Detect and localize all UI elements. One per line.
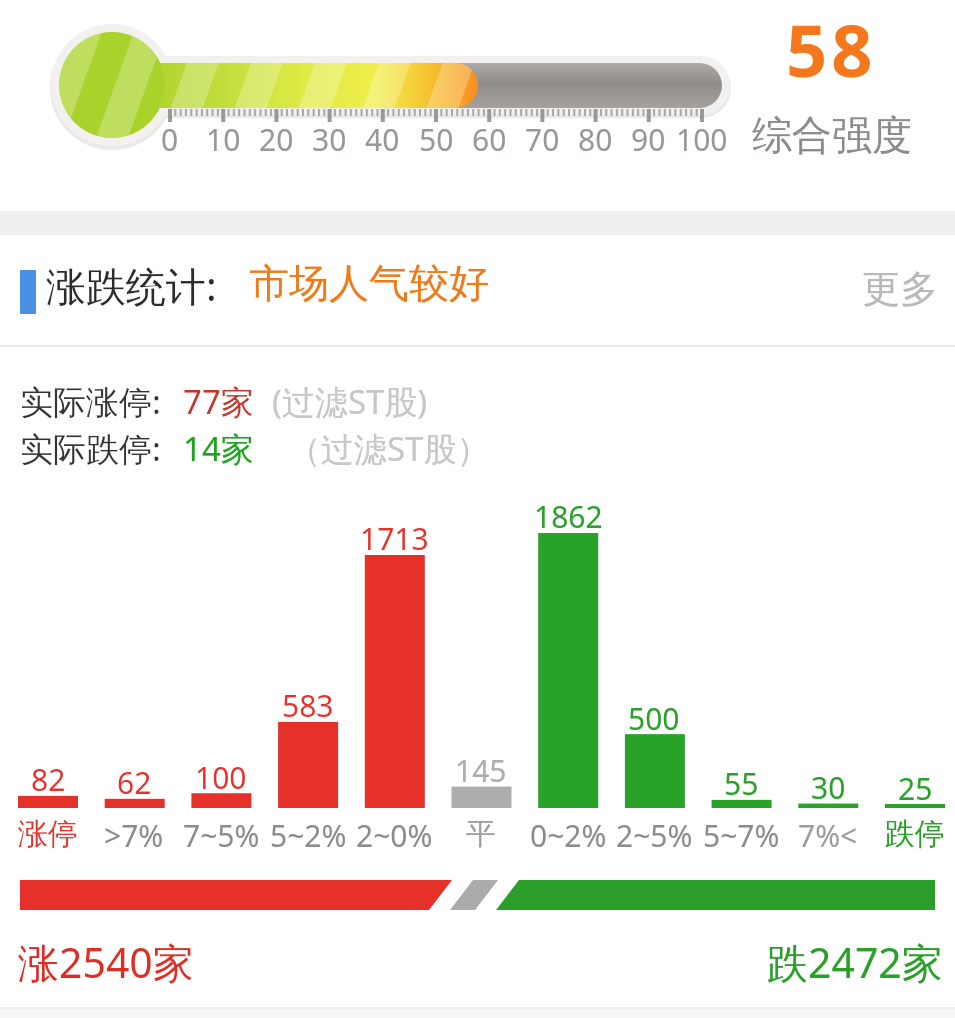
staticText: 1862: [534, 496, 603, 537]
staticText: 30: [811, 767, 846, 808]
button[interactable]: [0, 255, 955, 327]
staticText: 60: [472, 119, 507, 160]
staticText: 145: [455, 750, 507, 791]
staticText: 跌停: [885, 815, 945, 853]
staticText: 跌2472家: [767, 934, 943, 990]
staticText: 5~7%: [703, 815, 780, 856]
staticText: >7%: [104, 815, 164, 856]
staticText: 0~2%: [530, 815, 607, 856]
staticText: 100: [676, 119, 728, 160]
staticText: 82: [31, 759, 66, 800]
staticText: 80: [578, 119, 613, 160]
staticText: 500: [628, 698, 680, 739]
staticText: 70: [525, 119, 560, 160]
staticText: 30: [312, 119, 347, 160]
staticText: 7%<: [798, 815, 858, 856]
staticText: （过滤ST股）: [288, 426, 490, 471]
staticText: 涨停: [18, 815, 78, 853]
staticText: 更多: [862, 265, 938, 313]
staticText: 14家: [183, 426, 254, 471]
staticText: 62: [117, 762, 152, 803]
staticText: 40: [365, 119, 400, 160]
staticText: 涨跌统计:: [46, 258, 217, 313]
staticText: 实际涨停:: [20, 379, 161, 424]
staticText: 10: [206, 119, 241, 160]
staticText: 平: [466, 815, 496, 853]
staticText: 100: [195, 757, 247, 798]
button[interactable]: 更多: [850, 264, 950, 314]
staticText: 25: [898, 768, 933, 809]
staticText: 实际跌停:: [20, 426, 161, 471]
staticText: 55: [724, 763, 759, 804]
staticText: 0: [161, 119, 179, 160]
staticText: 50: [419, 119, 454, 160]
staticText: 583: [282, 685, 334, 726]
staticText: 市场人气较好: [249, 258, 489, 308]
staticText: 2~0%: [356, 815, 433, 856]
staticText: 2~5%: [616, 815, 693, 856]
staticText: 7~5%: [183, 815, 260, 856]
staticText: 90: [631, 119, 666, 160]
staticText: 1713: [360, 518, 429, 559]
staticText: 58: [786, 0, 877, 98]
staticText: 涨2540家: [18, 934, 194, 990]
staticText: 5~2%: [270, 815, 347, 856]
staticText: (过滤ST股): [272, 379, 428, 424]
staticText: 77家: [183, 379, 254, 424]
staticText: 20: [259, 119, 294, 160]
staticText: 综合强度: [752, 110, 912, 160]
